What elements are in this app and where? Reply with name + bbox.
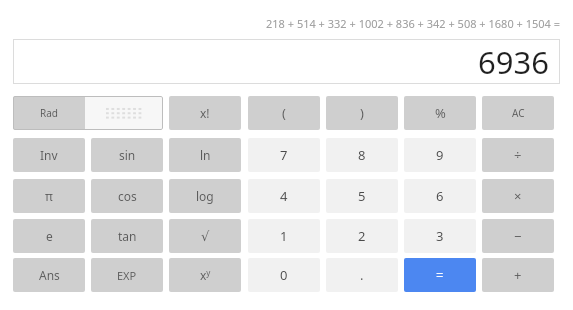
staticText: log [196, 188, 214, 204]
staticText: = [436, 266, 444, 284]
button[interactable]: Multiply [482, 179, 554, 213]
button[interactable]: Equals [404, 258, 476, 292]
staticText: ÷ [514, 146, 522, 164]
button[interactable]: Open parenthesis [248, 96, 320, 130]
button[interactable]: 2 [326, 219, 398, 253]
staticText: 218 + 514 + 332 + 1002 + 836 + 342 + 508… [265, 16, 560, 31]
button[interactable]: 4 [248, 179, 320, 213]
staticText: EXP [117, 268, 137, 283]
staticText: π [45, 188, 53, 204]
button[interactable]: 7 [248, 138, 320, 172]
staticText: 9 [436, 146, 444, 164]
staticText: × [514, 187, 522, 205]
button[interactable]: 6 [404, 179, 476, 213]
staticText: 6936 [478, 41, 549, 83]
staticText: ) [360, 104, 364, 122]
staticText: 8 [358, 146, 366, 164]
button[interactable]: Square root [169, 219, 241, 253]
button[interactable]: 5 [326, 179, 398, 213]
staticText: AC [512, 106, 525, 120]
staticText: + [514, 266, 522, 284]
button[interactable]: x to the power of y [169, 258, 241, 292]
button[interactable]: x factorial [169, 96, 241, 130]
staticText: 3 [436, 227, 444, 245]
staticText: % [435, 104, 446, 122]
staticText: x! [200, 105, 210, 121]
staticText: Inv [40, 147, 58, 163]
staticText: e [46, 228, 53, 244]
button[interactable]: Rad [13, 96, 85, 130]
staticText: 7 [280, 146, 288, 164]
staticText: cos [118, 188, 137, 204]
button[interactable]: 8 [326, 138, 398, 172]
staticText: 4 [280, 187, 288, 205]
button[interactable]: Natural logarithm [169, 138, 241, 172]
button[interactable]: Inverse [13, 138, 85, 172]
button[interactable]: Tangent [91, 219, 163, 253]
staticText: . [360, 266, 364, 284]
button[interactable]: 9 [404, 138, 476, 172]
staticText: tan [118, 228, 137, 244]
staticText: ln [200, 147, 211, 163]
button[interactable]: Sine [91, 138, 163, 172]
staticText: √ [201, 229, 210, 244]
button[interactable]: Plus [482, 258, 554, 292]
button[interactable]: Answer [13, 258, 85, 292]
staticText: ( [282, 104, 286, 122]
button[interactable]: Deg [85, 96, 163, 130]
button[interactable]: 0 [248, 258, 320, 292]
staticText: Rad [40, 106, 58, 120]
button[interactable]: Percent [404, 96, 476, 130]
staticText: Ans [39, 267, 60, 283]
staticText: sin [119, 147, 136, 163]
button[interactable]: All clear [482, 96, 554, 130]
staticText: 6 [436, 187, 444, 205]
staticText: − [514, 227, 522, 245]
button[interactable]: Pi [13, 179, 85, 213]
staticText: 1 [280, 227, 288, 245]
staticText: 5 [358, 187, 366, 205]
button[interactable]: Close parenthesis [326, 96, 398, 130]
button[interactable]: 1 [248, 219, 320, 253]
button[interactable]: Euler's number [13, 219, 85, 253]
button[interactable]: Minus [482, 219, 554, 253]
button[interactable]: Logarithm [169, 179, 241, 213]
button[interactable]: 3 [404, 219, 476, 253]
staticText: 0 [280, 266, 288, 284]
button[interactable]: Decimal point [326, 258, 398, 292]
button[interactable]: Exponent [91, 258, 163, 292]
button[interactable]: Cosine [91, 179, 163, 213]
staticText: xy [200, 267, 211, 283]
button[interactable]: Divide [482, 138, 554, 172]
staticText: 2 [358, 227, 366, 245]
